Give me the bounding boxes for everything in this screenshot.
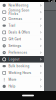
staticText: Coming Soon Flicks	[8, 9, 29, 16]
button[interactable]: Logout	[0, 56, 44, 63]
button[interactable]: Deals & Offers	[0, 29, 44, 36]
staticText: More	[8, 78, 16, 81]
button[interactable]: Settings	[0, 42, 44, 49]
staticText: Settings	[8, 44, 21, 48]
button[interactable]: Working Hours	[0, 69, 44, 76]
button[interactable]: Cinemas	[0, 15, 44, 22]
button[interactable]: Coming Soon Flicks	[0, 9, 44, 16]
staticText: Trail	[8, 24, 15, 27]
button[interactable]: New Meeting	[0, 2, 44, 9]
button[interactable]: Gift Card	[0, 36, 44, 43]
staticText: Working Hours	[8, 71, 31, 75]
button[interactable]: Help	[0, 83, 44, 90]
staticText: Bulk booking	[8, 64, 29, 68]
staticText: Help	[8, 85, 15, 88]
button[interactable]: Preferences	[0, 49, 44, 56]
button[interactable]: Bulk booking	[0, 63, 44, 70]
button[interactable]: Trail	[0, 22, 44, 29]
staticText: Gift Card	[8, 37, 21, 41]
staticText: Preferences	[8, 51, 27, 54]
staticText: Deals & Offers	[8, 31, 30, 34]
button[interactable]: More	[0, 76, 44, 83]
staticText: New Meeting	[8, 4, 28, 7]
staticText: Logout	[8, 58, 19, 61]
staticText: Cinemas	[8, 17, 22, 21]
